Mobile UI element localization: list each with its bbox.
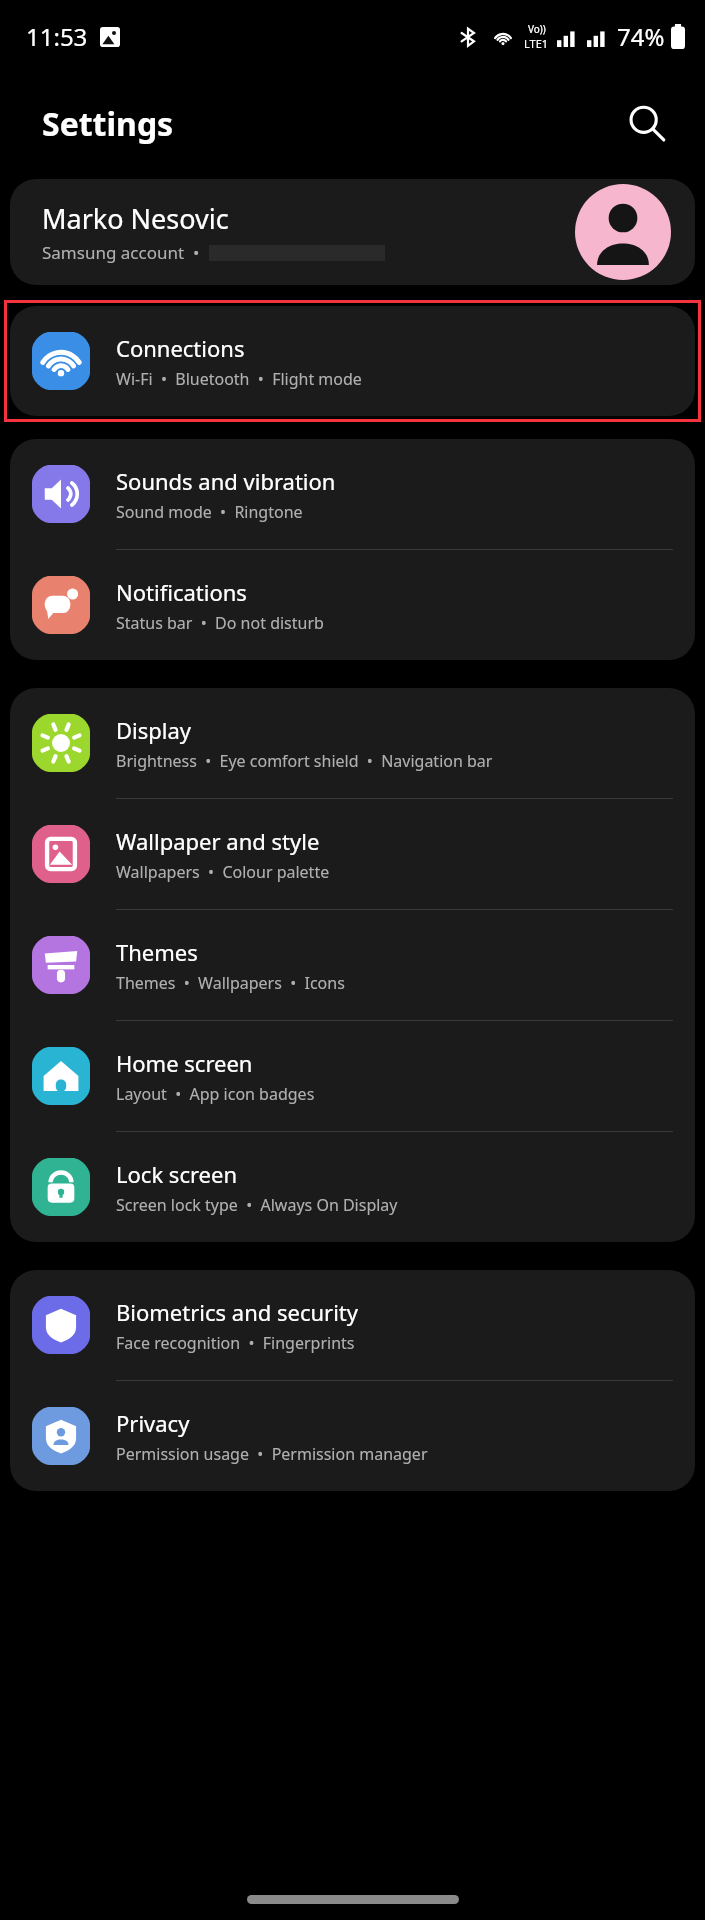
staticText: Samsung account • [42,241,209,264]
staticText: Face recognition • Fingerprints [116,1332,355,1354]
button[interactable]: Display [10,688,695,798]
staticText: Lock screen [116,1159,238,1189]
button[interactable]: Biometrics and security [10,1270,695,1380]
staticText: Biometrics and security [116,1297,359,1327]
button[interactable]: Wallpaper and style [10,799,695,909]
staticText: Layout • App icon badges [116,1083,315,1105]
staticText: Screen lock type • Always On Display [116,1194,398,1216]
button[interactable]: Lock screen [10,1132,695,1242]
staticText: Privacy [116,1408,190,1438]
button[interactable]: Privacy [10,1381,695,1491]
staticText: Vo)) [528,22,546,36]
button[interactable]: Sounds and vibration [10,439,695,549]
button[interactable]: Themes [10,910,695,1020]
button[interactable]: Notifications [10,550,695,660]
staticText: Wallpapers • Colour palette [116,861,330,883]
staticText: Display [116,715,192,745]
button[interactable]: Connections [10,306,695,416]
staticText: 11:53 [26,20,88,53]
staticText: Marko Nesovic [42,200,229,237]
staticText: Connections [116,333,245,363]
staticText: Permission usage • Permission manager [116,1443,428,1465]
staticText: Sound mode • Ringtone [116,501,303,523]
button[interactable]: Marko Nesovic [10,179,695,285]
staticText: LTE1 [524,36,549,51]
staticText: Sounds and vibration [116,466,336,496]
staticText: Themes [116,937,198,967]
staticText: 74% [617,20,665,53]
staticText: Settings [42,102,174,146]
button[interactable]: Home screen [10,1021,695,1131]
staticText: Brightness • Eye comfort shield • Naviga… [116,750,493,772]
staticText: Notifications [116,577,247,607]
staticText: Home screen [116,1048,253,1078]
button[interactable]: Search [621,98,673,150]
staticText: Wallpaper and style [116,826,320,856]
staticText: Themes • Wallpapers • Icons [116,972,345,994]
staticText: Status bar • Do not disturb [116,612,324,634]
staticText: Wi-Fi • Bluetooth • Flight mode [116,368,362,390]
